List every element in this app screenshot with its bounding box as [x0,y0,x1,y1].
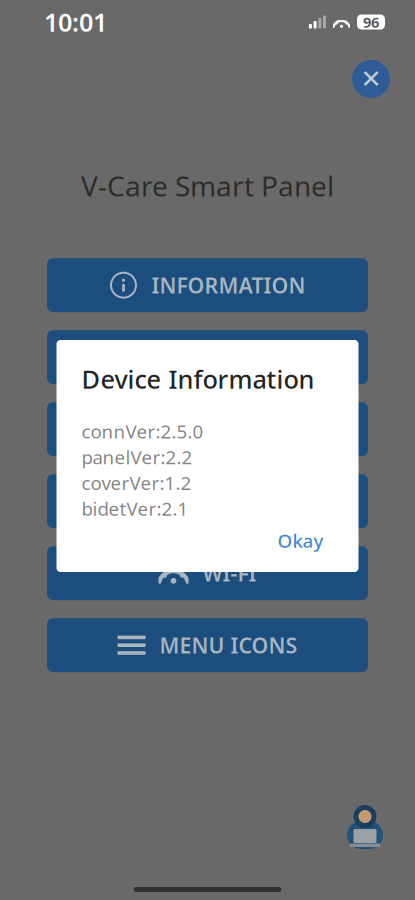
staticText: Device Information [81,362,314,396]
staticText: V-Care Smart Panel [81,167,334,204]
staticText: ✕ [360,65,381,93]
button[interactable]: WI-FI [47,546,368,600]
button[interactable]: INFORMATION [47,258,368,312]
button[interactable]: MENU ICONS [47,618,368,672]
button[interactable]: Panel control [47,330,368,384]
staticText: MENU ICONS [159,631,297,659]
staticText: Okay [277,528,323,553]
staticText: connVer:2.5.0 [81,419,203,444]
staticText: INFORMATION [151,271,305,299]
staticText: 10:01 [44,5,107,39]
button[interactable]: Okay [267,521,333,560]
button[interactable]: Panel control [47,402,368,456]
staticText: WI-FI [202,559,256,587]
staticText: bidetVer:2.1 [81,496,188,521]
button[interactable]: Panel control [47,474,368,528]
staticText: 96 [363,12,379,32]
button[interactable]: Close [349,57,393,101]
staticText: coverVer:1.2 [81,470,191,495]
staticText: panelVer:2.2 [81,445,192,469]
